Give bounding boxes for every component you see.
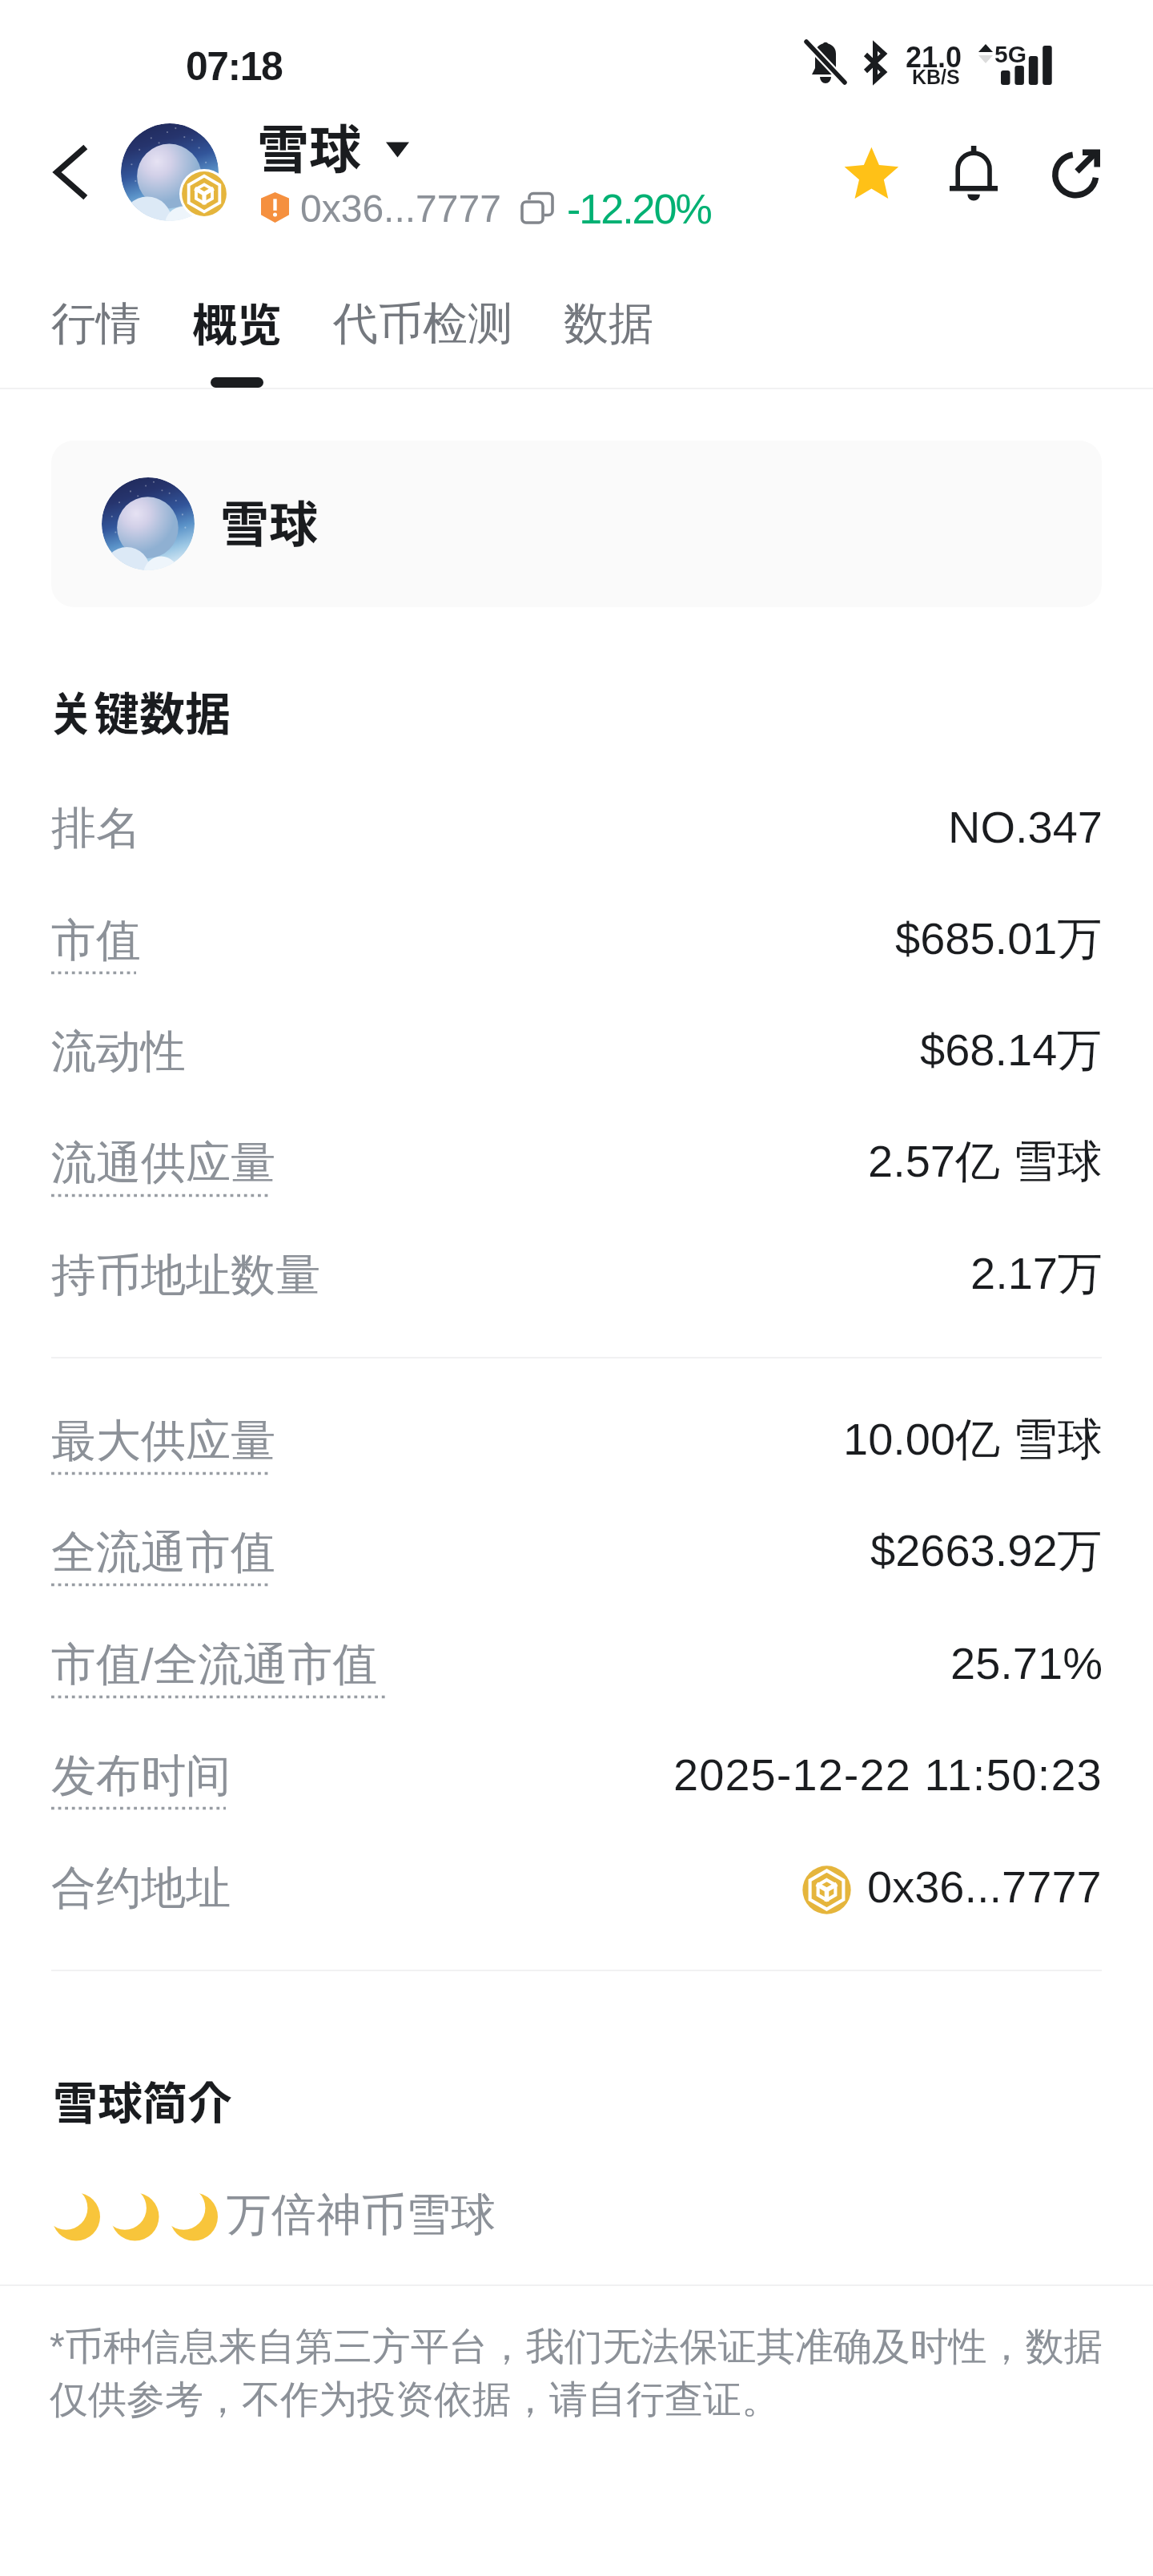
button[interactable]: Back [43, 146, 96, 199]
staticText: 最大供应量 [51, 1413, 275, 1470]
staticText: 2.17万 [970, 1246, 1103, 1302]
staticText: 5G [994, 41, 1027, 68]
staticText: 流通供应量 [51, 1135, 275, 1192]
staticText: 万倍神币雪球 [227, 2187, 496, 2244]
staticText: $685.01万 [895, 911, 1103, 968]
button[interactable]: Favourite [843, 146, 899, 202]
staticText: 07:18 [186, 44, 283, 89]
staticText: 0x36...7777 [867, 1862, 1102, 1912]
button[interactable]: 发布时间 [51, 1719, 1102, 1831]
button[interactable]: 概览 [192, 276, 282, 372]
button[interactable]: 流通供应量 [51, 1106, 1102, 1218]
staticText: -12.20% [567, 186, 711, 232]
staticText: $2663.92万 [870, 1523, 1103, 1580]
staticText: 持币地址数量 [51, 1247, 320, 1304]
staticText: 概览 [192, 289, 282, 354]
staticText: 合约地址 [51, 1860, 231, 1917]
button[interactable]: Share [1051, 149, 1103, 202]
button[interactable]: 合约地址 [51, 1831, 1102, 1943]
button[interactable]: 流动性 [51, 995, 1102, 1107]
button[interactable]: 市值/全流通市值 [51, 1608, 1102, 1720]
button[interactable]: 代币检测 [333, 276, 512, 372]
button[interactable]: 雪球 [51, 441, 1102, 607]
staticText: 市值 [51, 912, 141, 969]
staticText: 10.00亿 雪球 [843, 1411, 1103, 1468]
staticText: NO.347 [948, 802, 1103, 852]
staticText: $68.14万 [920, 1022, 1103, 1079]
staticText: 市值/全流通市值 [51, 1636, 378, 1693]
staticText: 雪球 [257, 108, 362, 183]
button[interactable]: 最大供应量 [51, 1384, 1102, 1496]
button[interactable]: 持币地址数量 [51, 1218, 1102, 1330]
staticText: 仅供参考，不作为投资依据，请自行查证。 [50, 2376, 780, 2424]
button[interactable]: 行情 [51, 276, 141, 372]
staticText: 雪球 [220, 485, 319, 556]
button[interactable]: 数据 [564, 276, 653, 372]
button[interactable]: Notifications [948, 143, 999, 203]
staticText: 排名 [51, 800, 141, 857]
staticText: 代币检测 [333, 296, 512, 352]
staticText: 雪球简介 [53, 2067, 232, 2132]
button[interactable]: Copy address [519, 191, 556, 226]
button[interactable]: 全流通市值 [51, 1495, 1102, 1608]
staticText: 行情 [51, 296, 141, 352]
staticText: 数据 [564, 296, 653, 352]
button[interactable]: 市值 [51, 883, 1102, 996]
staticText: 0x36...7777 [300, 187, 501, 231]
staticText: 发布时间 [51, 1748, 231, 1805]
button[interactable]: 排名 [51, 771, 1102, 883]
staticText: 关键数据 [48, 678, 231, 744]
staticText: 流动性 [51, 1024, 186, 1081]
staticText: 2.57亿 雪球 [868, 1133, 1103, 1190]
staticText: 2025-12-22 11:50:23 [673, 1749, 1103, 1800]
button[interactable]: 雪球 [251, 98, 416, 210]
staticText: *币种信息来自第三方平台，我们无法保证其准确及时性，数据 [50, 2323, 1103, 2371]
staticText: 25.71% [950, 1638, 1103, 1688]
staticText: KB/S [912, 66, 960, 88]
staticText: 全流通市值 [51, 1524, 275, 1581]
staticText: 21.0 [906, 41, 962, 73]
